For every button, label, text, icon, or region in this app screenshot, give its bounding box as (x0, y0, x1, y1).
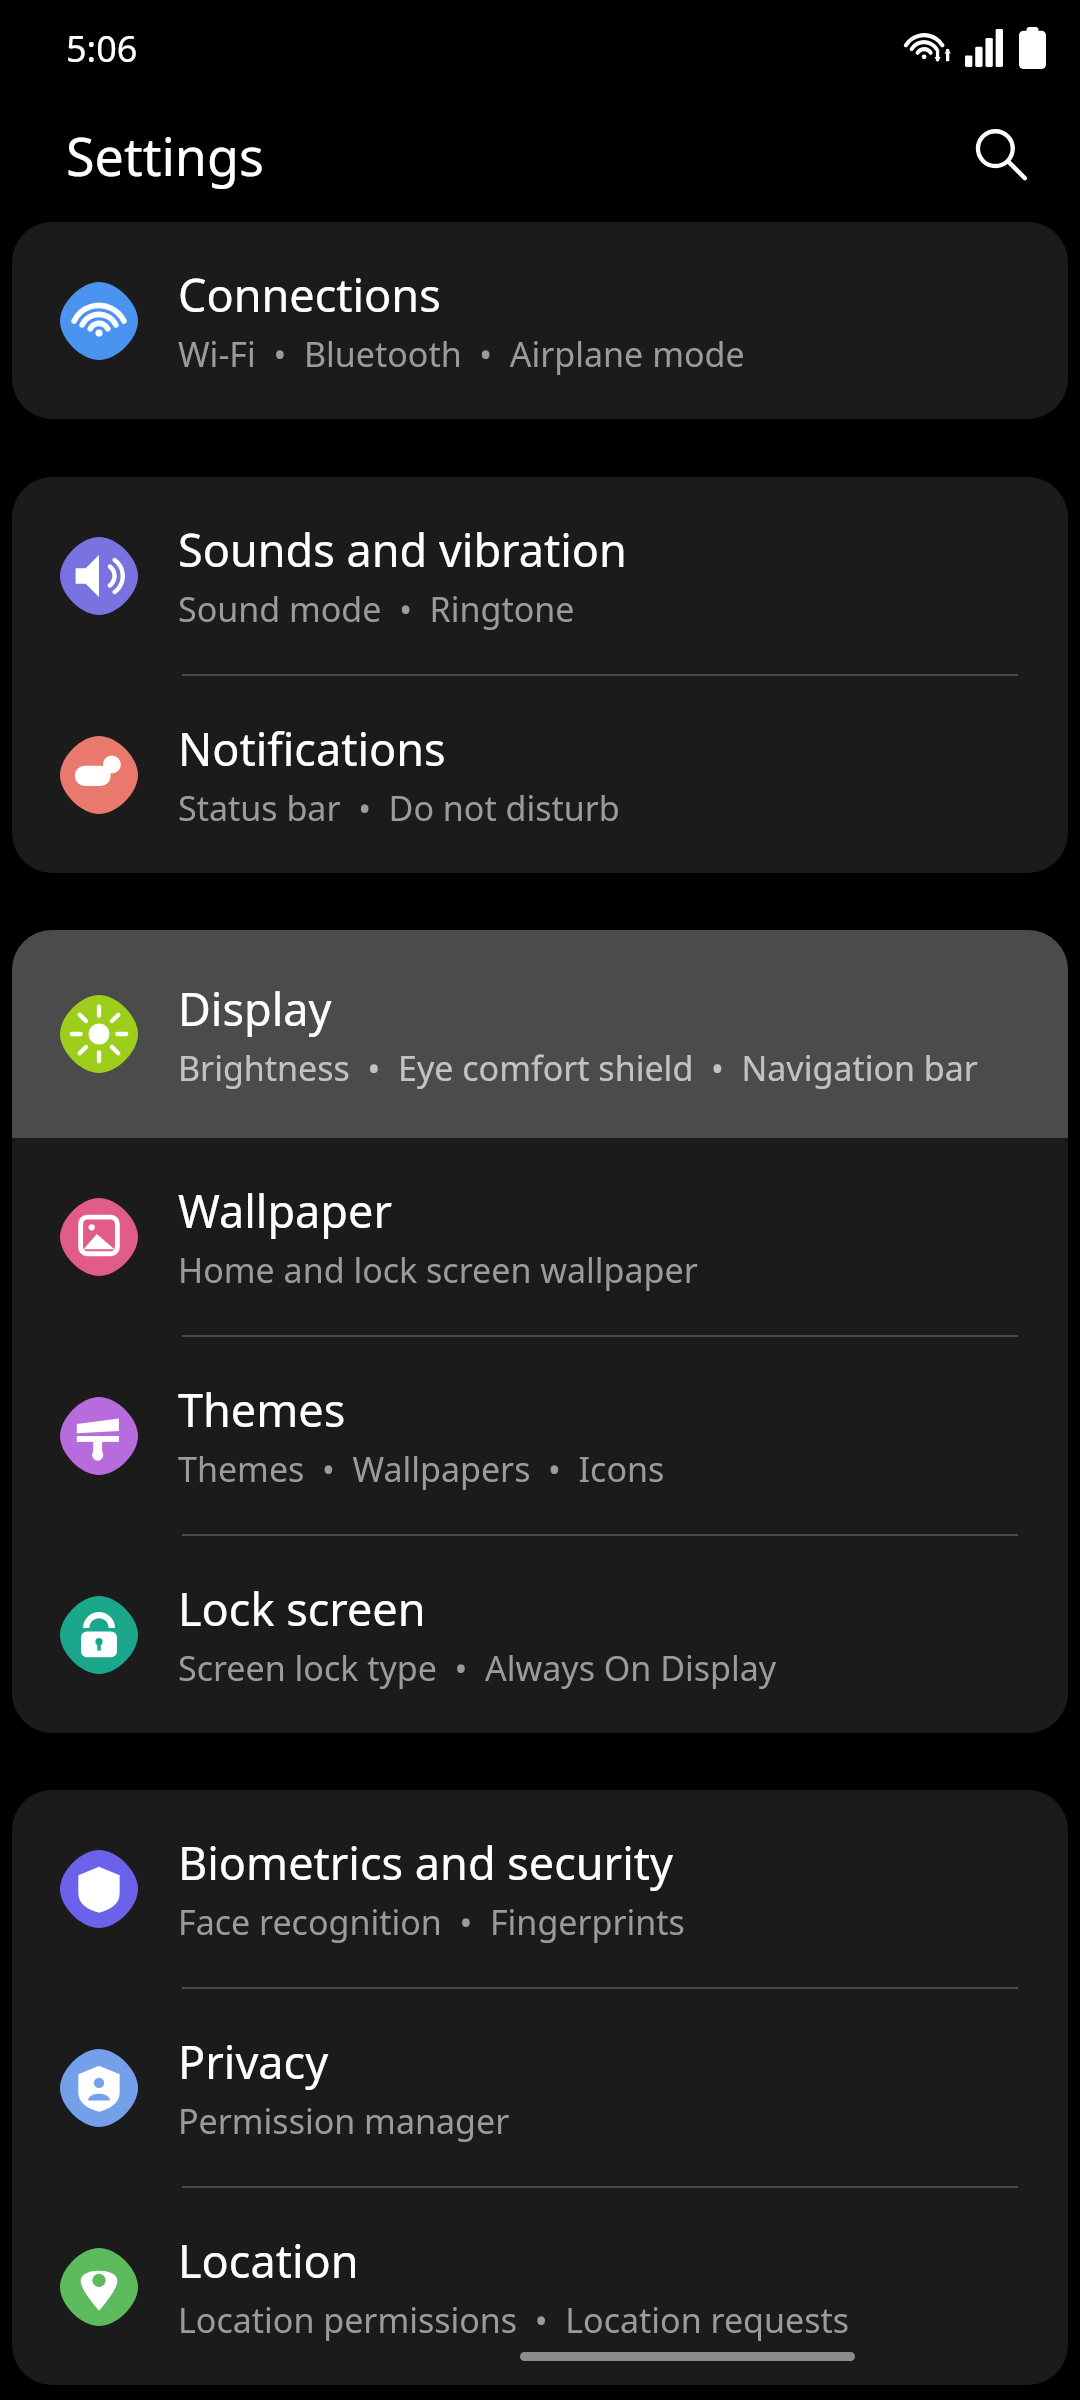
button[interactable]: Connections (12, 222, 1068, 419)
staticText: Settings (66, 120, 264, 191)
staticText: Brightness • Eye comfort shield • Naviga… (178, 1045, 978, 1091)
staticText: Sound mode • Ringtone (178, 586, 575, 632)
button[interactable]: Lock screen (12, 1536, 1068, 1733)
staticText: Display (178, 978, 332, 1039)
staticText: 5:06 (66, 24, 138, 73)
staticText: Notifications (178, 718, 446, 779)
button[interactable]: Themes (12, 1337, 1068, 1534)
button[interactable]: Display (12, 930, 1068, 1138)
staticText: Themes (178, 1379, 346, 1440)
staticText: Location permissions • Location requests (178, 2297, 850, 2343)
staticText: Permission manager (178, 2098, 510, 2144)
button[interactable]: Wallpaper (12, 1138, 1068, 1335)
staticText: Face recognition • Fingerprints (178, 1899, 685, 1945)
button[interactable]: Sounds and vibration (12, 477, 1068, 674)
button[interactable]: Search (956, 111, 1044, 199)
staticText: Status bar • Do not disturb (178, 785, 620, 831)
staticText: Sounds and vibration (178, 519, 627, 580)
button[interactable]: Privacy (12, 1989, 1068, 2186)
staticText: Themes • Wallpapers • Icons (178, 1446, 665, 1492)
staticText: Wi-Fi • Bluetooth • Airplane mode (178, 331, 745, 377)
staticText: Home and lock screen wallpaper (178, 1247, 698, 1293)
staticText: Biometrics and security (178, 1832, 674, 1893)
button[interactable]: Location (12, 2188, 1068, 2385)
staticText: Location (178, 2230, 359, 2291)
staticText: Privacy (178, 2031, 329, 2092)
staticText: Screen lock type • Always On Display (178, 1645, 777, 1691)
staticText: Wallpaper (178, 1180, 392, 1241)
button[interactable]: Notifications (12, 676, 1068, 873)
staticText: Lock screen (178, 1578, 426, 1639)
button[interactable]: Biometrics and security (12, 1790, 1068, 1987)
staticText: Connections (178, 264, 441, 325)
